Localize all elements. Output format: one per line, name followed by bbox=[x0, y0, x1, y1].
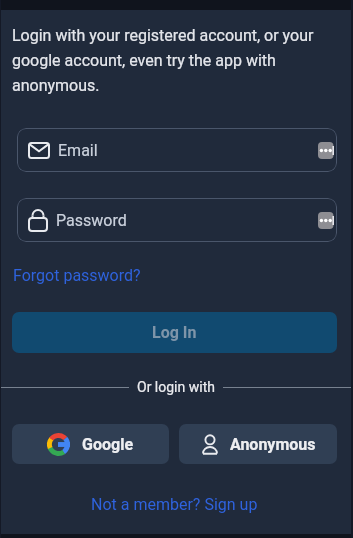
staticText: Email bbox=[58, 141, 98, 160]
staticText: Login with your registered account, or y… bbox=[12, 26, 314, 95]
button[interactable]: Email bbox=[17, 128, 337, 172]
button[interactable]: Google bbox=[12, 424, 169, 464]
button[interactable]: Log In bbox=[12, 312, 337, 353]
button[interactable]: Forgot password? bbox=[12, 266, 141, 285]
button[interactable]: Not a member? Sign up bbox=[91, 495, 258, 514]
staticText: Google bbox=[82, 435, 134, 454]
button[interactable]: Password bbox=[17, 198, 337, 242]
staticText: Anonymous bbox=[230, 435, 316, 454]
staticText: Password bbox=[56, 211, 127, 230]
button[interactable]: Anonymous bbox=[179, 424, 337, 464]
staticText: Log In bbox=[152, 323, 197, 342]
staticText: Or login with bbox=[137, 379, 215, 395]
